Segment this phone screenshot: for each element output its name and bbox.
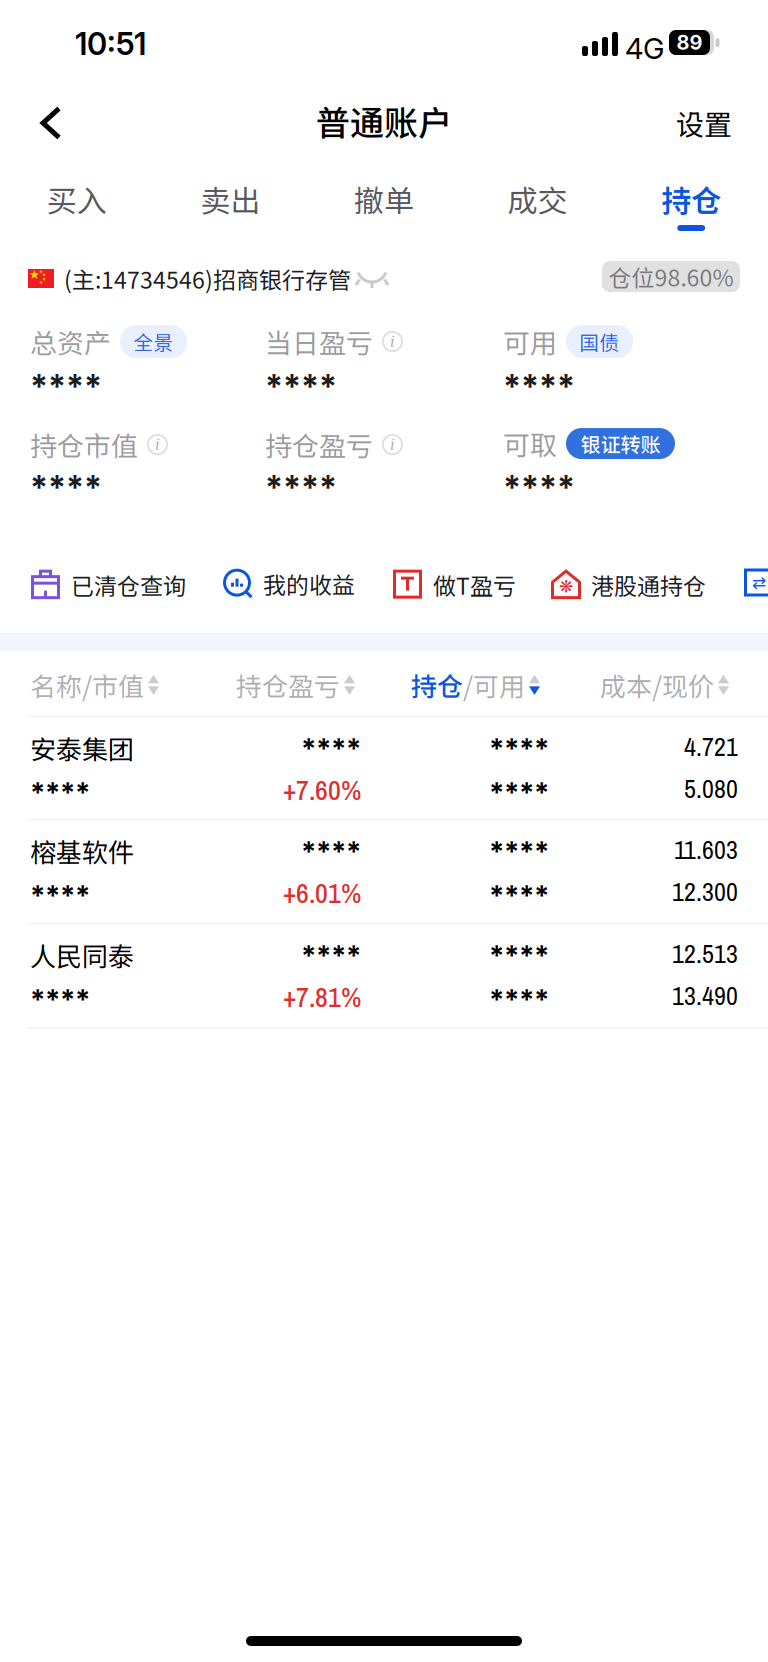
- staticText: 港股通持仓: [591, 568, 706, 601]
- staticText: ****: [489, 982, 549, 1016]
- staticText: 做T盈亏: [433, 568, 516, 601]
- staticText: ⇄: [752, 573, 766, 592]
- button[interactable]: ❋: [551, 568, 724, 601]
- staticText: 买入: [47, 177, 107, 221]
- staticText: ****: [30, 366, 102, 406]
- staticText: 全景: [133, 327, 173, 356]
- staticText: 撤单: [354, 177, 414, 221]
- staticText: 总资产: [30, 322, 111, 361]
- staticText: ****: [503, 366, 575, 406]
- staticText: +7.81%: [283, 978, 361, 1016]
- staticText: ★: [28, 268, 40, 282]
- staticText: ****: [489, 834, 549, 868]
- button[interactable]: 做T盈亏: [393, 568, 534, 601]
- staticText: 持仓: [661, 177, 721, 221]
- staticText: ****: [301, 834, 361, 868]
- staticText: /现价: [652, 666, 714, 704]
- staticText: i: [390, 333, 395, 350]
- staticText: ****: [489, 878, 549, 912]
- button[interactable]: 安泰集团: [0, 717, 768, 819]
- button[interactable]: 设置: [632, 85, 732, 161]
- staticText: 银证转账: [580, 429, 660, 458]
- staticText: 安泰集团: [30, 729, 134, 767]
- staticText: 设置: [676, 103, 732, 143]
- staticText: 可用: [503, 322, 557, 361]
- staticText: 当日盈亏: [265, 322, 373, 361]
- staticText: 持仓盈亏: [265, 425, 373, 464]
- staticText: i: [155, 436, 160, 453]
- staticText: /可用: [463, 666, 525, 704]
- staticText: ****: [30, 982, 90, 1016]
- button[interactable]: 已清仓查询: [31, 568, 204, 601]
- button[interactable]: 卖出: [154, 168, 307, 244]
- button[interactable]: 成交: [461, 168, 614, 244]
- staticText: 榕基软件: [30, 832, 134, 870]
- staticText: 持仓盈亏: [236, 666, 340, 704]
- button[interactable]: 仓位98.60%: [602, 261, 740, 292]
- staticText: ❋: [559, 577, 573, 597]
- staticText: 名称: [30, 666, 82, 704]
- button[interactable]: 持仓: [614, 168, 768, 244]
- staticText: 89: [676, 30, 702, 55]
- staticText: ****: [30, 878, 90, 912]
- staticText: 我的收益: [263, 567, 355, 600]
- staticText: 4.721: [684, 729, 738, 764]
- button[interactable]: 成本: [600, 666, 768, 704]
- staticText: ****: [301, 731, 361, 765]
- staticText: 12.513: [672, 936, 738, 971]
- button[interactable]: 撤单: [307, 168, 461, 244]
- button[interactable]: 银证转账: [566, 428, 675, 459]
- button[interactable]: 榕基软件: [0, 820, 768, 922]
- staticText: ****: [489, 775, 549, 809]
- staticText: 成本: [600, 666, 652, 704]
- staticText: ****: [489, 938, 549, 972]
- staticText: ****: [30, 467, 102, 507]
- staticText: +6.01%: [283, 874, 361, 912]
- staticText: 国债: [579, 327, 619, 356]
- button[interactable]: 我的收益: [223, 567, 373, 600]
- staticText: (主:14734546)招商银行存管: [64, 262, 351, 295]
- staticText: 成交: [508, 177, 568, 221]
- staticText: i: [390, 436, 395, 453]
- staticText: ****: [489, 731, 549, 765]
- button[interactable]: 名称: [30, 666, 210, 704]
- button[interactable]: 买入: [0, 168, 154, 244]
- button[interactable]: Back: [12, 85, 90, 161]
- staticText: ****: [265, 467, 337, 507]
- staticText: 10:51: [75, 25, 146, 62]
- button[interactable]: ⇄: [744, 568, 768, 598]
- staticText: ★: [42, 272, 46, 277]
- staticText: 持仓市值: [30, 425, 138, 464]
- staticText: 11.603: [674, 832, 738, 867]
- staticText: 12.300: [672, 874, 738, 909]
- staticText: 卖出: [200, 177, 260, 221]
- staticText: 5.080: [684, 771, 738, 806]
- button[interactable]: Hide balance: [344, 255, 400, 301]
- staticText: ****: [265, 366, 337, 406]
- staticText: +7.60%: [283, 771, 361, 809]
- staticText: ****: [30, 775, 90, 809]
- staticText: 人民同泰: [30, 936, 134, 974]
- staticText: 持仓: [411, 666, 463, 704]
- button[interactable]: 人民同泰: [0, 924, 768, 1026]
- staticText: 仓位98.60%: [608, 260, 733, 293]
- staticText: ****: [301, 938, 361, 972]
- staticText: ★: [39, 280, 43, 285]
- staticText: ★: [42, 277, 46, 282]
- staticText: 13.490: [672, 978, 738, 1013]
- button[interactable]: 持仓盈亏: [236, 666, 416, 704]
- staticText: 可取: [503, 424, 557, 463]
- button[interactable]: 持仓: [411, 666, 591, 704]
- staticText: 普通账户: [316, 96, 452, 145]
- staticText: ****: [503, 467, 575, 507]
- staticText: ★: [39, 269, 43, 274]
- staticText: 已清仓查询: [71, 568, 186, 601]
- staticText: 4G: [625, 31, 664, 66]
- staticText: /市值: [82, 666, 144, 704]
